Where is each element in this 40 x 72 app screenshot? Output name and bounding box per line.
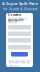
staticText: for Xcode & Beyond [3,6,37,11]
staticText: Create account [8,12,24,22]
staticText: Already have an account? [9,60,30,68]
staticText: It only takes a minute [8,17,26,24]
button[interactable] [11,52,28,56]
staticText: A Super Split Pane [2,1,38,6]
